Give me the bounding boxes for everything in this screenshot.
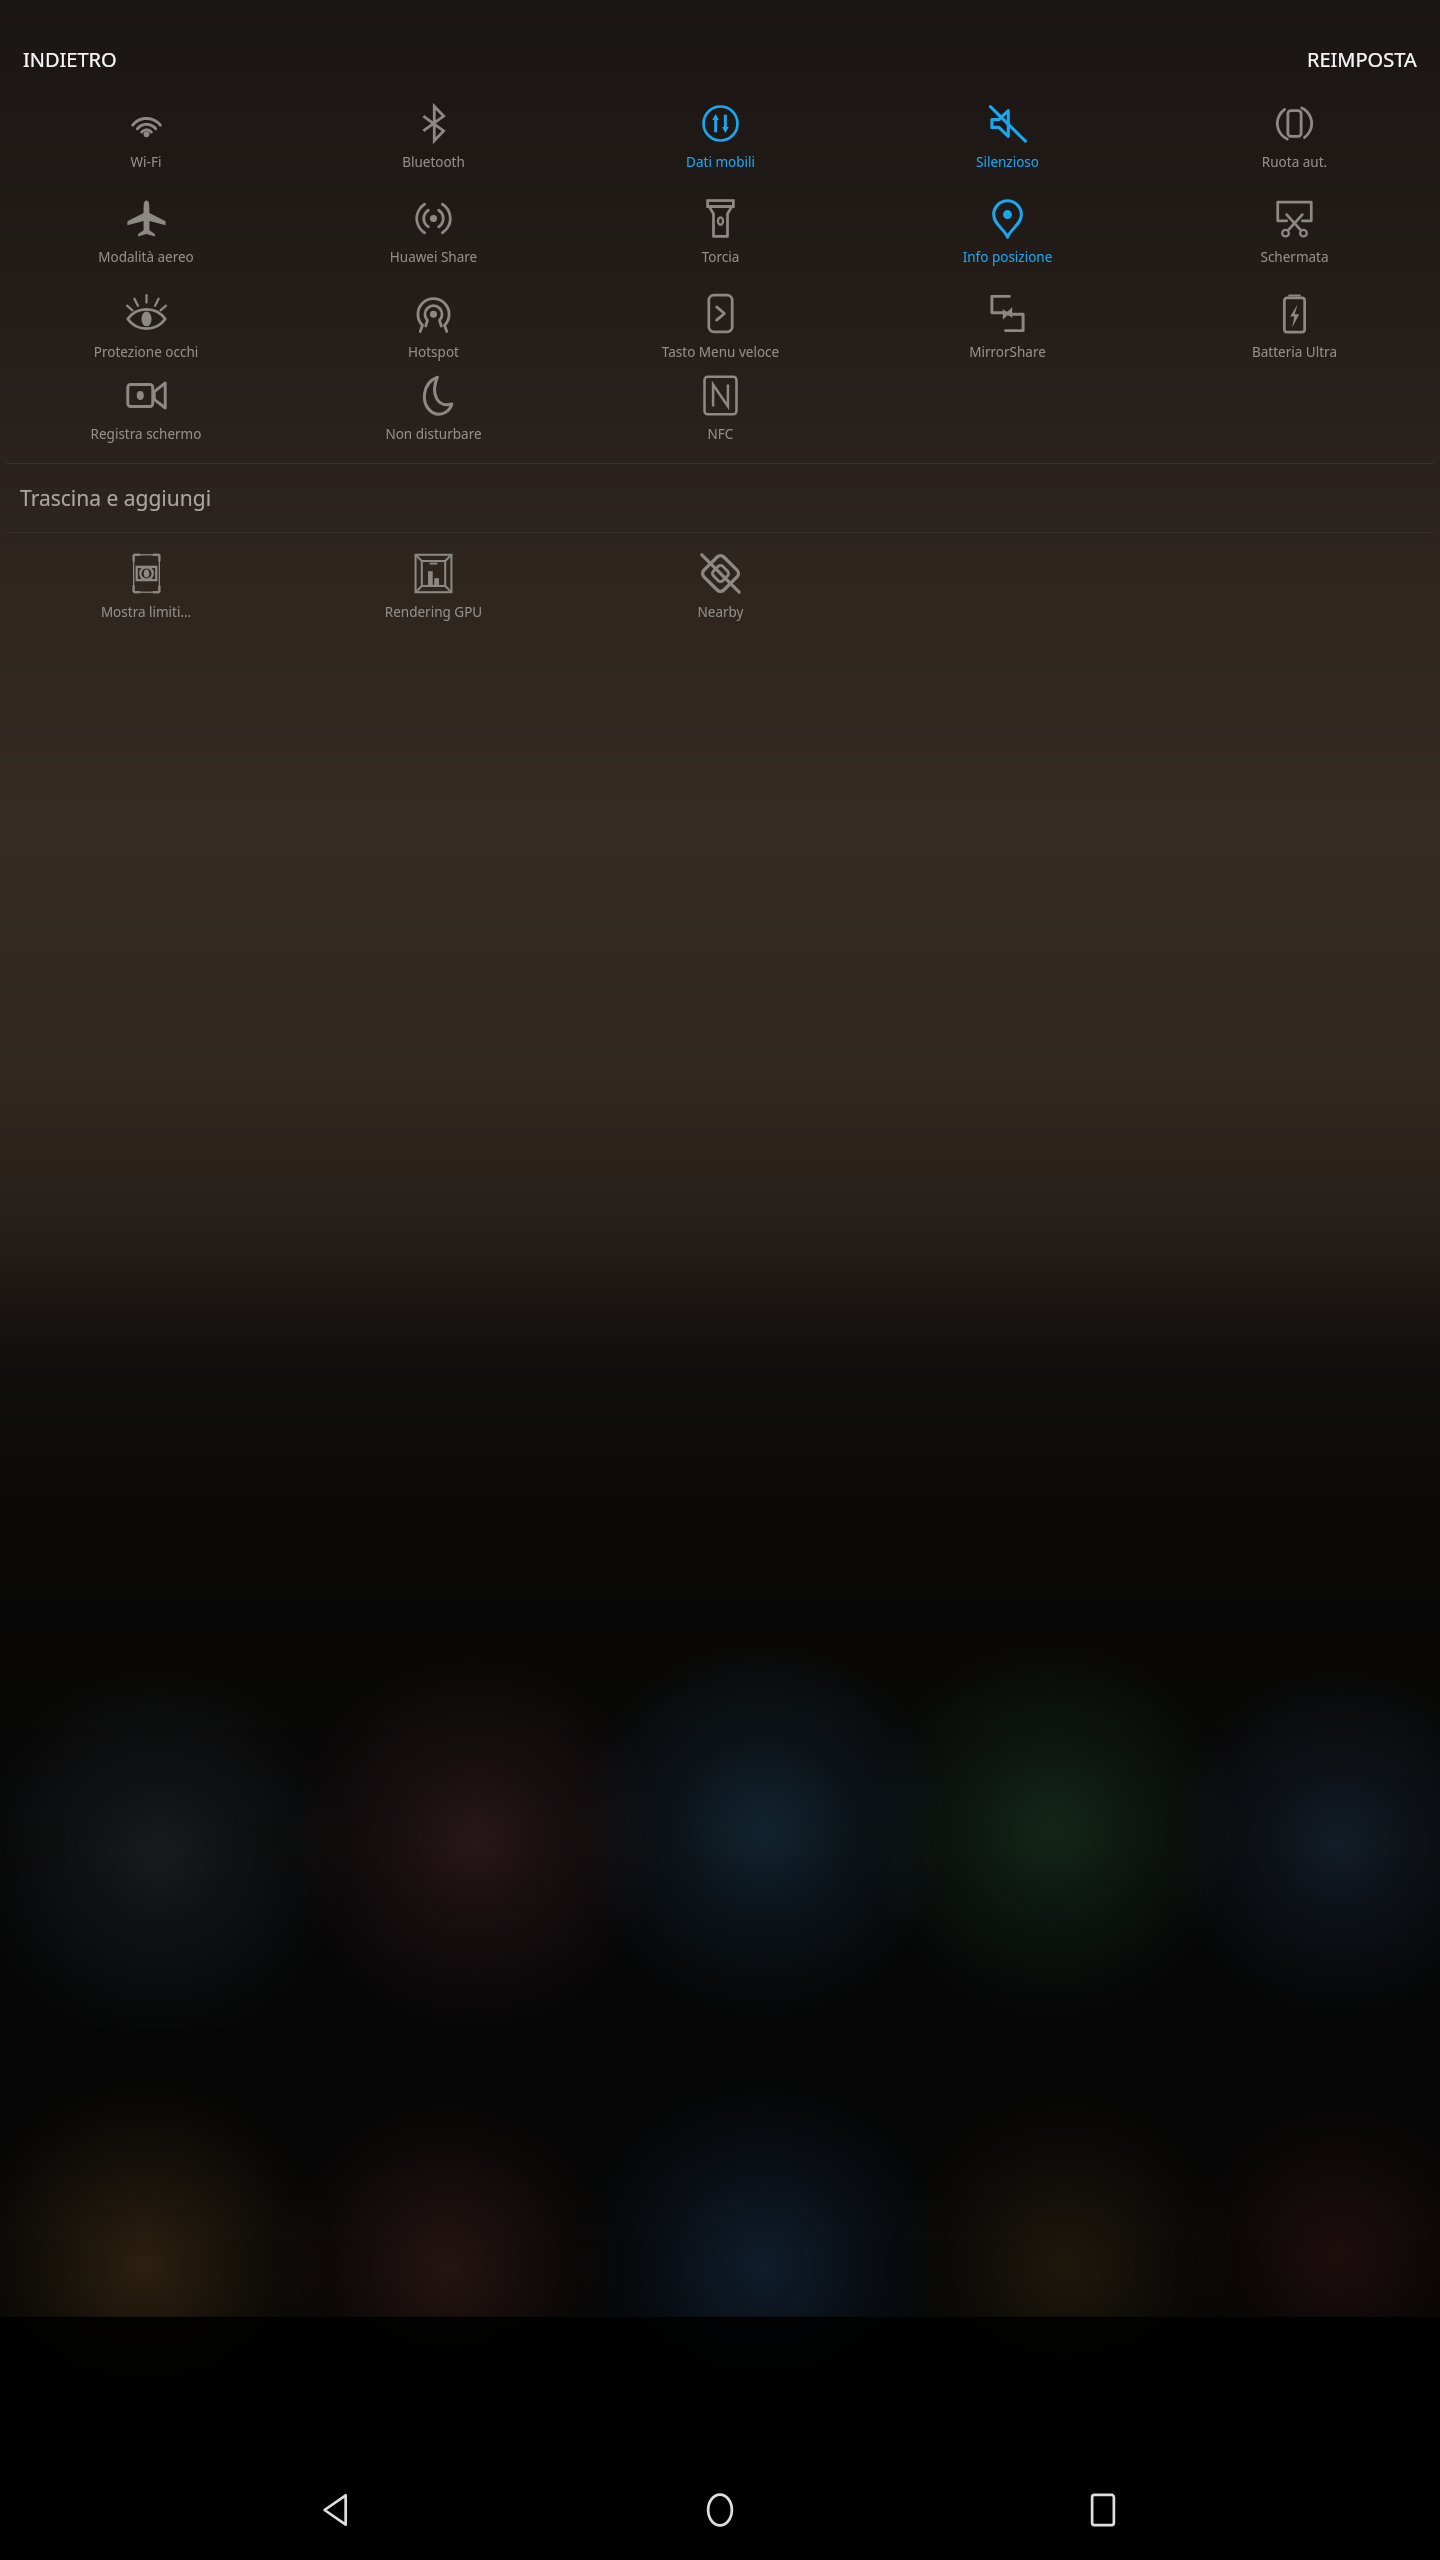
staticText: Schermata (1151, 248, 1438, 266)
button[interactable]: NFC (577, 367, 864, 447)
button[interactable]: Back (293, 2465, 383, 2555)
button[interactable]: Rendering GPU (290, 545, 577, 625)
button[interactable]: Protezione occhi (2, 285, 290, 365)
button[interactable]: Non disturbare (290, 367, 577, 447)
staticText: Batteria Ultra (1151, 343, 1438, 361)
staticText: Non disturbare (290, 425, 577, 443)
button[interactable]: Recent apps (1058, 2465, 1148, 2555)
button[interactable]: INDIETRO (3, 36, 137, 83)
staticText: REIMPOSTA (1307, 46, 1417, 73)
button[interactable]: MirrorShare (864, 285, 1151, 365)
button[interactable]: Nearby (577, 545, 864, 625)
staticText: Silenzioso (864, 153, 1151, 171)
button[interactable]: Hotspot (290, 285, 577, 365)
staticText: Dati mobili (577, 153, 864, 171)
staticText: Torcia (577, 248, 864, 266)
staticText: Trascina e aggiungi (20, 484, 212, 513)
staticText: Ruota aut. (1151, 153, 1438, 171)
staticText: NFC (577, 425, 864, 443)
staticText: MirrorShare (864, 343, 1151, 361)
button[interactable]: Home (675, 2465, 765, 2555)
staticText: Registra schermo (2, 425, 290, 443)
button[interactable]: Schermata (1151, 190, 1438, 270)
button[interactable]: REIMPOSTA (1287, 36, 1437, 83)
button[interactable]: Tasto Menu veloce (577, 285, 864, 365)
button[interactable]: Mostra limiti… (2, 545, 290, 625)
button[interactable]: Dati mobili (577, 95, 864, 175)
button[interactable]: Registra schermo (2, 367, 290, 447)
staticText: Rendering GPU (290, 603, 577, 621)
button[interactable]: Huawei Share (290, 190, 577, 270)
button[interactable]: Bluetooth (290, 95, 577, 175)
button[interactable]: Info posizione (864, 190, 1151, 270)
staticText: Protezione occhi (2, 343, 290, 361)
staticText: INDIETRO (23, 46, 117, 73)
staticText: Nearby (577, 603, 864, 621)
staticText: Modalità aereo (2, 248, 290, 266)
button[interactable]: Modalità aereo (2, 190, 290, 270)
staticText: Wi-Fi (2, 153, 290, 171)
button[interactable]: Wi-Fi (2, 95, 290, 175)
button[interactable]: Silenzioso (864, 95, 1151, 175)
button[interactable]: Torcia (577, 190, 864, 270)
staticText: Bluetooth (290, 153, 577, 171)
staticText: Mostra limiti… (2, 603, 290, 621)
staticText: Tasto Menu veloce (577, 343, 864, 361)
staticText: Huawei Share (290, 248, 577, 266)
staticText: Hotspot (290, 343, 577, 361)
staticText: Info posizione (864, 248, 1151, 266)
button[interactable]: Ruota aut. (1151, 95, 1438, 175)
button[interactable]: Batteria Ultra (1151, 285, 1438, 365)
